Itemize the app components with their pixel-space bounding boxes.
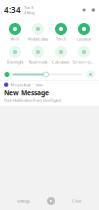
staticText: Calculator [52, 59, 70, 65]
button[interactable]: Torch [49, 23, 72, 43]
staticText: Torch [56, 36, 66, 42]
staticText: Msg to App · now [10, 82, 42, 87]
button[interactable]: Clear [72, 198, 82, 204]
staticText: Screen record [72, 59, 95, 65]
button[interactable]: Location [72, 23, 95, 43]
staticText: Clear [72, 198, 82, 204]
button[interactable]: Calculator [49, 46, 72, 66]
staticText: 4 May [24, 10, 35, 15]
staticText: Location [77, 36, 91, 42]
staticText: Settings [17, 198, 30, 204]
button[interactable]: Screen record [72, 46, 95, 66]
staticText: Tue 3 [24, 5, 33, 10]
button[interactable]: Settings [17, 198, 30, 204]
staticText: Wi-Fi [10, 36, 19, 42]
button[interactable]: Mobile data [26, 23, 49, 43]
staticText: Mobile data [28, 36, 48, 42]
staticText: 4:34 [4, 5, 21, 15]
staticText: New Message [4, 88, 49, 97]
button[interactable]: Backlight [3, 46, 26, 66]
button[interactable]: Read mode [26, 46, 49, 66]
staticText: Push Notification from DevDigest [4, 97, 61, 103]
button[interactable]: Clear all notifications [47, 197, 55, 205]
button[interactable]: Wi-Fi [3, 23, 26, 43]
staticText: Read mode [28, 59, 47, 65]
staticText: Backlight [7, 59, 23, 65]
